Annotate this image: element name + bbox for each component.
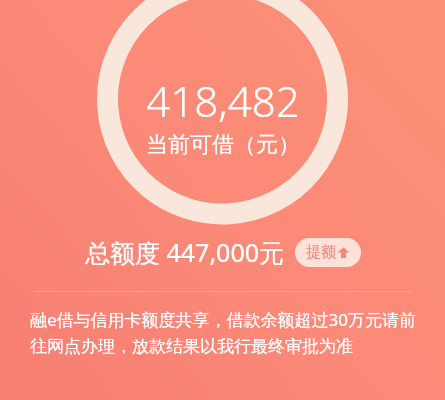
- staticText: 当前可借（元）: [146, 131, 300, 159]
- staticText: 418,482: [146, 72, 300, 129]
- staticText: 融e借与信用卡额度共享，借款余额超过30万元请前往网点办理，放款结果以我行最终审…: [30, 308, 417, 357]
- staticText: 总额度 447,000元: [85, 235, 285, 269]
- button[interactable]: 提额: [295, 238, 361, 267]
- staticText: 提额: [306, 243, 336, 262]
- other: Increase credit limit: [337, 246, 350, 259]
